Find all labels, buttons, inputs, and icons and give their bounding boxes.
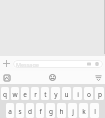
staticText: i [77, 90, 79, 99]
button[interactable]: k [79, 103, 88, 118]
staticText: f [39, 107, 42, 116]
staticText: o [87, 90, 91, 99]
staticText: h [59, 107, 64, 116]
staticText: t [44, 90, 47, 99]
button[interactable]: u [62, 87, 71, 100]
staticText: p [98, 90, 102, 99]
button[interactable]: s [16, 103, 24, 118]
button[interactable]: i [73, 87, 82, 100]
button[interactable]: t [41, 87, 49, 100]
button[interactable]: f [36, 103, 44, 118]
button[interactable]: Add attachment [0, 57, 13, 70]
staticText: k [82, 107, 86, 116]
button[interactable]: p [95, 87, 104, 100]
button[interactable]: Keyboard settings [91, 71, 105, 84]
staticText: d [28, 107, 32, 116]
button[interactable]: o [84, 87, 93, 100]
button[interactable]: a [6, 103, 14, 118]
staticText: s [18, 107, 22, 116]
button[interactable]: y [51, 87, 60, 100]
button[interactable]: d [26, 103, 34, 118]
staticText: j [72, 107, 74, 116]
staticText: w [12, 90, 18, 99]
staticText: y [54, 90, 58, 99]
staticText: u [64, 90, 69, 99]
button[interactable]: Message [13, 60, 103, 68]
button[interactable]: r [31, 87, 39, 100]
staticText: r [34, 90, 37, 99]
button[interactable]: Camera [86, 61, 92, 67]
button[interactable]: Voice message [94, 61, 100, 67]
button[interactable]: e [21, 87, 29, 100]
staticText: e [23, 90, 27, 99]
staticText: Message [16, 61, 39, 68]
button[interactable]: h [57, 103, 66, 118]
staticText: q [3, 90, 7, 99]
button[interactable]: j [68, 103, 77, 118]
button[interactable]: w [11, 87, 19, 100]
button[interactable]: Emoji [45, 71, 59, 84]
staticText: a [8, 107, 12, 116]
button[interactable]: g [46, 103, 55, 118]
button[interactable]: l [90, 103, 99, 118]
staticText: g [49, 107, 53, 116]
button[interactable]: Stickers [0, 71, 14, 84]
button[interactable]: q [1, 87, 9, 100]
staticText: l [94, 107, 96, 116]
